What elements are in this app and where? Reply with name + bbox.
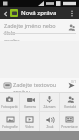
button[interactable]: Záznam zvuk (40, 93, 59, 111)
button[interactable]: Zadejte textovou zprávu (13, 78, 63, 92)
staticText: Kamera (24, 105, 36, 109)
staticText: Zadejte jméno nebo číslo (4, 22, 66, 36)
button[interactable]: Zadejte jméno nebo číslo (0, 19, 79, 41)
staticText: Nová zpráva (21, 9, 57, 17)
button[interactable]: Send (65, 79, 77, 91)
staticText: Fotoaparát (1, 105, 18, 109)
staticText: Zadejte textovou zprávu (13, 81, 63, 92)
button[interactable]: More options (67, 8, 77, 18)
button[interactable]: Video (20, 112, 39, 131)
staticText: Záznam zvuk (40, 105, 59, 109)
button[interactable]: Fotografie (0, 112, 19, 131)
button[interactable]: Fotoaparát (0, 93, 19, 111)
staticText: Video (25, 125, 34, 129)
button[interactable]: Kamera (20, 93, 39, 111)
staticText: 0/1 (71, 79, 77, 84)
button[interactable]: Back (2, 10, 9, 17)
staticText: Prezentace (61, 125, 78, 129)
staticText: Fotografie (2, 125, 18, 129)
button[interactable]: Zvuk (40, 112, 59, 131)
button[interactable]: Prezentace (60, 112, 79, 131)
staticText: Zvuk (46, 125, 54, 129)
staticText: osoby (4, 37, 20, 41)
staticText: Kontakt (64, 105, 76, 109)
button[interactable]: Keyboard (2, 80, 12, 90)
button[interactable]: Add contact (66, 22, 77, 33)
button[interactable]: Kontakt (60, 93, 79, 111)
